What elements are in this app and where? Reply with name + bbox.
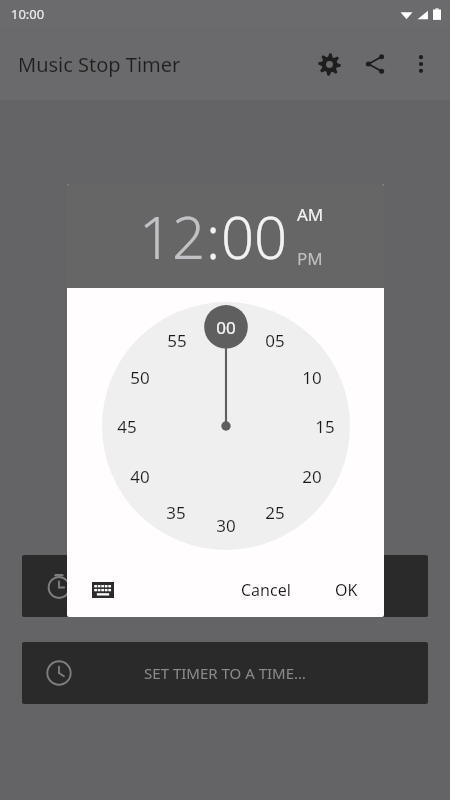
button[interactable]: 30	[206, 505, 246, 545]
button[interactable]: SET TIMER TO A TIME…	[22, 642, 428, 704]
button[interactable]: 35	[156, 492, 196, 532]
staticText: 20	[302, 465, 322, 488]
staticText: 00	[216, 316, 236, 339]
button[interactable]: 55	[157, 320, 197, 360]
button[interactable]: 15	[305, 406, 345, 446]
button[interactable]: More options	[398, 41, 444, 87]
button[interactable]: 12	[139, 197, 206, 276]
button[interactable]: PM	[297, 245, 323, 272]
staticText: Cancel	[241, 579, 291, 601]
staticText: 55	[167, 329, 187, 352]
staticText: 10:00	[11, 5, 45, 23]
staticText: 45	[117, 415, 137, 438]
button[interactable]: 45	[107, 406, 147, 446]
staticText: 30	[216, 514, 236, 537]
staticText: PM	[297, 247, 323, 270]
button[interactable]: 20	[292, 456, 332, 496]
staticText: SET TIMER FOR…	[166, 576, 285, 596]
staticText: 25	[265, 501, 285, 524]
button[interactable]: Share	[352, 41, 398, 87]
staticText: Music Stop Timer	[18, 51, 181, 78]
button[interactable]: 10	[292, 357, 332, 397]
staticText: AM	[297, 203, 324, 226]
staticText: 40	[130, 465, 150, 488]
staticText: :	[206, 197, 221, 276]
staticText: 35	[166, 501, 186, 524]
button[interactable]: Switch to text input	[81, 568, 125, 612]
button[interactable]: Settings	[306, 41, 352, 87]
staticText: OK	[335, 579, 358, 601]
button[interactable]: 25	[255, 492, 295, 532]
button[interactable]: 50	[120, 357, 160, 397]
staticText: SET TIMER TO A TIME…	[144, 663, 306, 683]
staticText: 15	[315, 415, 335, 438]
staticText: 50	[130, 366, 150, 389]
staticText: 10	[302, 366, 322, 389]
button[interactable]: Cancel	[227, 570, 305, 610]
button[interactable]: 00	[221, 197, 288, 276]
button[interactable]: 00	[206, 307, 246, 347]
button[interactable]: OK	[323, 570, 370, 610]
button[interactable]: 40	[120, 456, 160, 496]
staticText: 05	[265, 329, 285, 352]
button[interactable]: 05	[255, 320, 295, 360]
button[interactable]: SET TIMER FOR…	[22, 555, 428, 617]
button[interactable]: AM	[297, 201, 324, 228]
